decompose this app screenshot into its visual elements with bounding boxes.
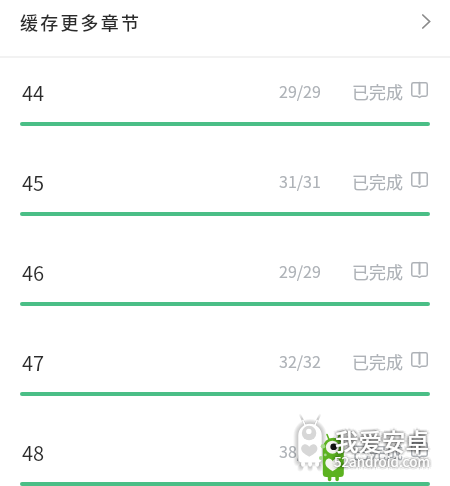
staticText: 52android.com [334,451,431,471]
staticText: 我爱安卓 [337,424,431,458]
staticText: 我爱安卓 [336,425,430,459]
staticText: 已完成 [352,79,403,104]
button[interactable]: 45 [0,148,450,238]
staticText: 52android.com [334,449,431,469]
staticText: 52android.com [333,452,430,472]
staticText: 我爱安卓 [335,425,429,459]
staticText: 52android.com [331,453,428,473]
staticText: 45 [22,168,45,197]
button[interactable]: 44 [0,58,450,148]
staticText: 我爱安卓 [336,423,430,457]
staticText: 52android.com [334,454,431,474]
staticText: 我爱安卓 [335,423,429,457]
staticText: 47 [22,348,45,377]
staticText: 52android.com [336,449,433,469]
staticText: 我爱安卓 [335,421,429,455]
staticText: 52android.com [335,452,432,472]
button[interactable]: 48 [0,418,450,486]
staticText: 我爱安卓 [338,424,432,458]
staticText: 缓存更多章节 [20,9,142,35]
staticText: 52android.com [334,453,431,473]
staticText: 52android.com [333,451,430,471]
button[interactable]: 缓存更多章节 [0,0,450,56]
staticText: 29/29 [279,259,321,282]
staticText: 52android.com [337,451,434,471]
staticText: 52android.com [334,452,431,472]
staticText: 29/29 [279,79,321,102]
staticText: 52android.com [334,450,431,470]
staticText: 我爱安卓 [332,426,426,460]
staticText: 我爱安卓 [334,425,428,459]
staticText: 52android.com [332,452,429,472]
staticText: 52android.com [336,451,433,471]
staticText: 我爱安卓 [333,423,427,457]
button[interactable]: 46 [0,238,450,328]
other: More [422,15,430,28]
staticText: 我爱安卓 [332,424,426,458]
staticText: 我爱安卓 [335,422,429,456]
staticText: 我爱安卓 [333,425,427,459]
staticText: 我爱安卓 [335,424,429,458]
staticText: 52android.com [336,453,433,473]
staticText: 我爱安卓 [332,422,426,456]
staticText: 我爱安卓 [335,426,429,460]
staticText: 已完成 [352,439,403,464]
staticText: 52android.com [334,448,431,468]
staticText: 已完成 [352,169,403,194]
staticText: 52android.com [332,450,429,470]
staticText: 48 [22,438,45,467]
staticText: 我爱安卓 [337,422,431,456]
staticText: 我爱安卓 [334,423,428,457]
staticText: 52android.com [333,450,430,470]
staticText: 52android.com [332,451,429,471]
staticText: 52android.com [334,452,431,472]
staticText: 已完成 [352,259,403,284]
staticText: 我爱安卓 [333,424,427,458]
staticText: 我爱安卓 [335,425,429,459]
staticText: 我爱安卓 [334,424,428,458]
staticText: 52android.com [335,450,432,470]
staticText: 我爱安卓 [335,427,429,461]
staticText: 52android.com [331,451,428,471]
staticText: 我爱安卓 [337,426,431,460]
staticText: 52android.com [334,450,431,470]
staticText: 52android.com [335,451,432,471]
staticText: 46 [22,258,45,287]
staticText: 我爱安卓 [335,423,429,457]
staticText: 已完成 [352,349,403,374]
button[interactable]: 47 [0,328,450,418]
staticText: 31/31 [279,169,321,192]
staticText: 32/32 [279,349,321,372]
staticText: 38/38 [279,439,321,462]
staticText: 我爱安卓 [336,424,430,458]
staticText: 52android.com [331,449,428,469]
staticText: 44 [22,78,45,107]
